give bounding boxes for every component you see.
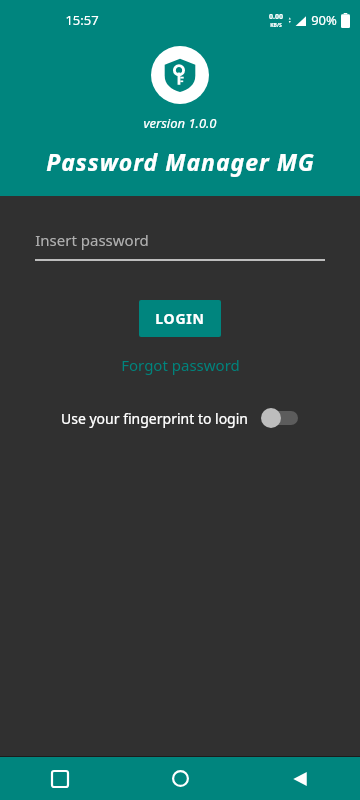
button[interactable]: Back [240,757,360,800]
staticText: Insert password [35,230,149,250]
staticText: LOGIN [155,309,205,328]
button[interactable]: Insert password [35,230,325,261]
staticText: KB/S [270,22,282,29]
staticText: Password Manager MG [46,146,315,177]
staticText: 0.00 [269,12,283,22]
button[interactable]: Home [120,757,240,800]
staticText: Use your fingerprint to login [61,409,248,428]
button[interactable]: Recent apps [0,757,120,800]
button[interactable]: Use your fingerprint to login toggle [261,407,299,429]
staticText: Forgot password [121,355,240,375]
staticText: version 1.0.0 [143,114,217,132]
staticText: 15:57 [65,11,99,29]
button[interactable]: Use your fingerprint to login [0,407,360,429]
button[interactable]: LOGIN [139,300,221,337]
staticText: 90% [311,11,337,29]
button[interactable]: Forgot password [113,351,248,379]
